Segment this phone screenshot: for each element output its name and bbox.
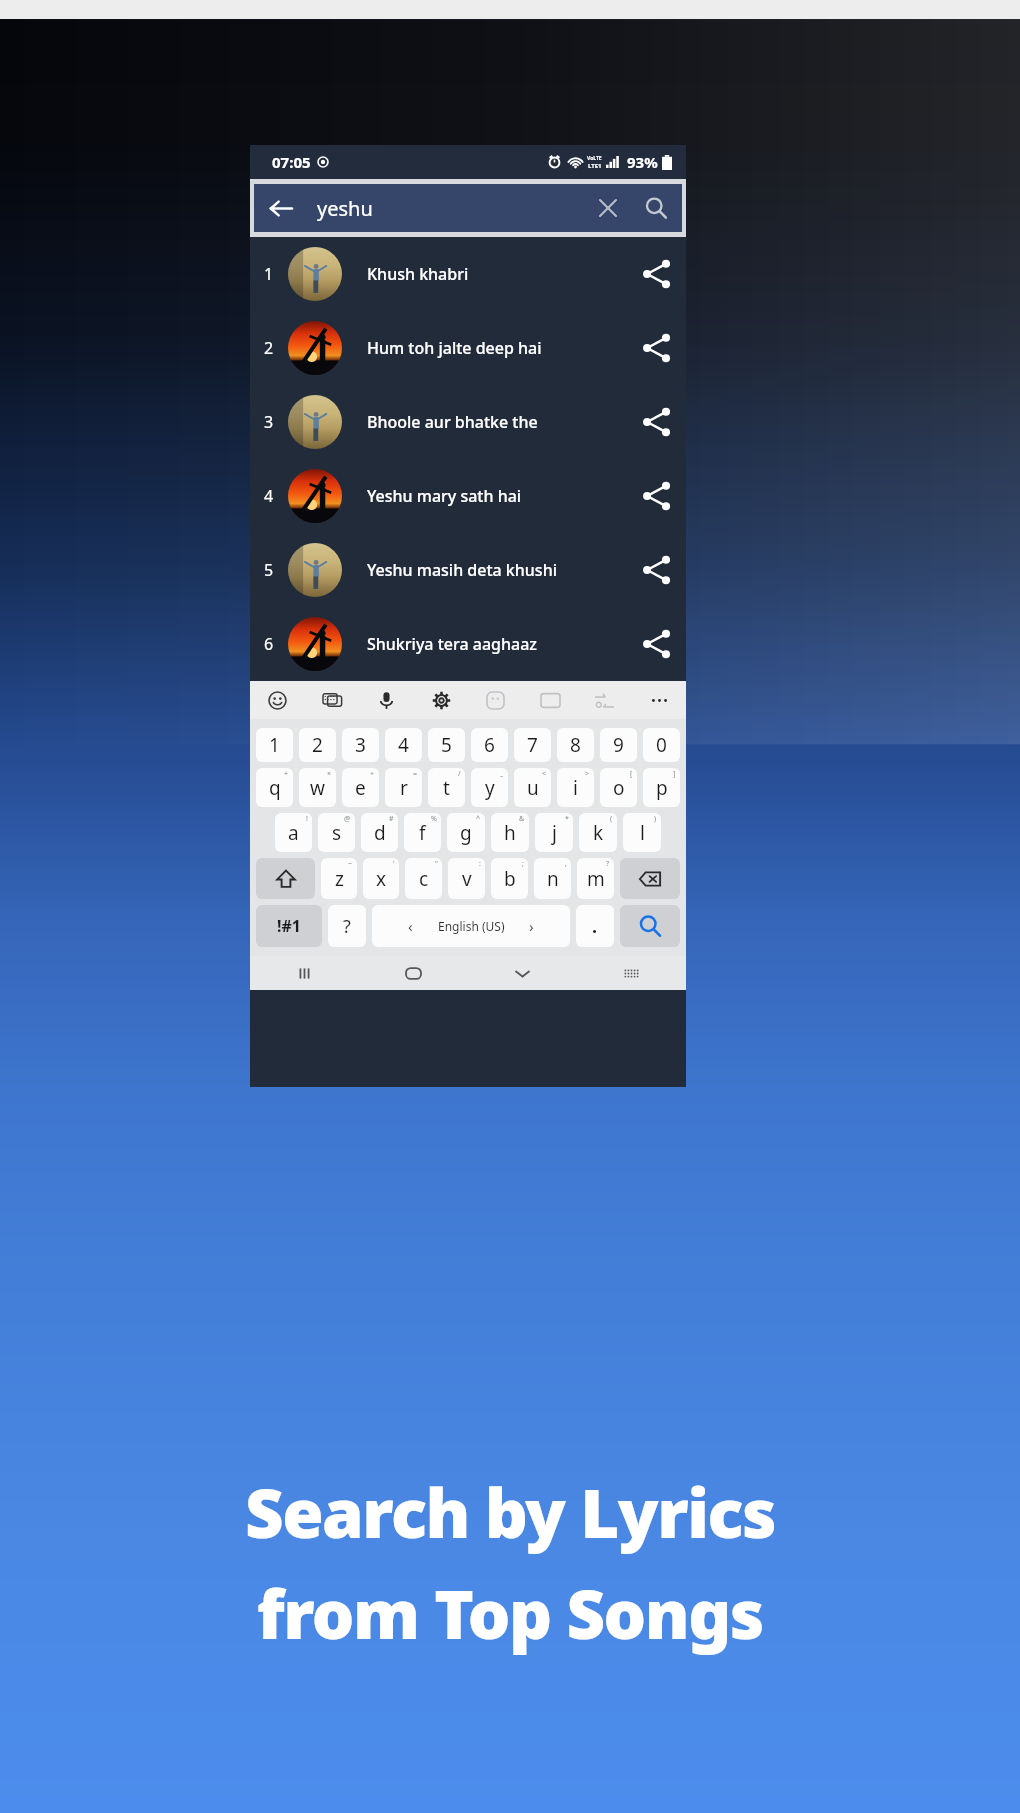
staticText: 5 xyxy=(264,559,274,581)
button[interactable]: s xyxy=(318,813,355,852)
button[interactable]: ‹ xyxy=(372,905,570,947)
button[interactable]: Emoji xyxy=(262,685,292,715)
button[interactable]: Backspace xyxy=(620,858,680,899)
staticText: o xyxy=(613,775,625,801)
staticText: 6 xyxy=(484,732,495,758)
button[interactable]: 4 xyxy=(250,459,686,533)
staticText: 9 xyxy=(613,732,624,758)
button[interactable]: Share xyxy=(628,393,686,451)
button[interactable]: 6 xyxy=(471,728,508,762)
button[interactable]: Share xyxy=(628,245,686,303)
staticText: c xyxy=(419,866,429,892)
button[interactable]: m xyxy=(577,858,614,899)
button[interactable]: Keyboard layout xyxy=(577,956,686,990)
button[interactable]: b xyxy=(491,858,528,899)
button[interactable]: 8 xyxy=(557,728,594,762)
button[interactable]: 4 xyxy=(385,728,422,762)
button[interactable]: 7 xyxy=(514,728,551,762)
button[interactable]: Back xyxy=(254,184,306,232)
staticText: # xyxy=(389,814,394,824)
staticText: LTE1 xyxy=(588,162,602,170)
button[interactable]: 1 xyxy=(250,237,686,311)
staticText: ( xyxy=(610,814,613,824)
button[interactable]: Clear xyxy=(586,186,630,230)
button[interactable]: 0 xyxy=(643,728,680,762)
staticText: z xyxy=(335,866,344,892)
button[interactable]: e xyxy=(342,768,379,807)
staticText: !#1 xyxy=(277,915,302,937)
button[interactable]: c xyxy=(405,858,442,899)
button[interactable]: g xyxy=(447,813,485,852)
staticText: p xyxy=(656,775,668,801)
button[interactable]: h xyxy=(491,813,529,852)
staticText: & xyxy=(519,814,525,824)
button[interactable]: 5 xyxy=(428,728,465,762)
staticText: " xyxy=(435,859,438,869)
button[interactable]: Back xyxy=(254,184,682,232)
button[interactable]: Shift xyxy=(256,858,315,899)
button[interactable]: j xyxy=(535,813,573,852)
button[interactable]: Recents xyxy=(250,956,359,990)
button[interactable]: Search xyxy=(620,905,680,947)
button[interactable]: Share xyxy=(628,467,686,525)
button[interactable]: k xyxy=(579,813,617,852)
button[interactable]: Search xyxy=(630,184,682,232)
button[interactable]: Keyboard modes xyxy=(317,685,347,715)
button[interactable]: u xyxy=(514,768,551,807)
staticText: 07:05 xyxy=(272,152,311,172)
button[interactable]: t xyxy=(428,768,465,807)
button[interactable]: !#1 xyxy=(256,905,322,947)
button[interactable]: o xyxy=(600,768,637,807)
button[interactable]: l xyxy=(623,813,661,852)
button[interactable]: v xyxy=(448,858,485,899)
button[interactable]: ? xyxy=(328,905,366,947)
button[interactable]: n xyxy=(534,858,571,899)
staticText: 6 xyxy=(264,633,274,655)
button[interactable]: Stickers xyxy=(480,685,510,715)
button[interactable]: Home xyxy=(359,956,468,990)
button[interactable]: Hide keyboard xyxy=(468,956,577,990)
button[interactable]: 1 xyxy=(256,728,293,762)
button[interactable]: f xyxy=(404,813,441,852)
button[interactable]: Share xyxy=(628,319,686,377)
button[interactable]: Share xyxy=(628,615,686,673)
staticText: ^ xyxy=(476,814,481,824)
button[interactable]: . xyxy=(576,905,614,947)
button[interactable]: GIF xyxy=(535,685,565,715)
button[interactable]: 9 xyxy=(600,728,637,762)
staticText: b xyxy=(504,866,516,892)
button[interactable]: 6 xyxy=(250,607,686,681)
button[interactable]: Settings xyxy=(426,685,456,715)
button[interactable]: Voice input xyxy=(371,685,401,715)
button[interactable]: r xyxy=(385,768,422,807)
button[interactable]: q xyxy=(256,768,293,807)
button[interactable]: 2 xyxy=(250,311,686,385)
button[interactable]: a xyxy=(275,813,312,852)
staticText: Shukriya tera aaghaaz xyxy=(367,633,537,655)
button[interactable]: 5 xyxy=(250,533,686,607)
button[interactable]: 3 xyxy=(342,728,379,762)
button[interactable]: i xyxy=(557,768,594,807)
staticText: a xyxy=(288,820,299,846)
button[interactable]: Share xyxy=(628,541,686,599)
staticText: : xyxy=(479,859,481,869)
staticText: h xyxy=(504,820,516,846)
button[interactable]: 3 xyxy=(250,385,686,459)
button[interactable]: y xyxy=(471,768,508,807)
staticText: > xyxy=(585,769,590,779)
staticText: + xyxy=(284,769,289,779)
staticText: [ xyxy=(630,769,633,779)
staticText: d xyxy=(374,820,386,846)
button[interactable]: More options xyxy=(644,685,674,715)
staticText: 93% xyxy=(627,152,658,172)
button[interactable]: 2 xyxy=(299,728,336,762)
staticText: g xyxy=(460,820,472,846)
staticText: ? xyxy=(606,859,610,869)
staticText: 3 xyxy=(264,411,274,433)
button[interactable]: p xyxy=(643,768,680,807)
button[interactable]: z xyxy=(321,858,357,899)
button[interactable]: w xyxy=(299,768,336,807)
button[interactable]: x xyxy=(363,858,399,899)
button[interactable]: d xyxy=(361,813,398,852)
button[interactable]: Translate xyxy=(589,685,619,715)
